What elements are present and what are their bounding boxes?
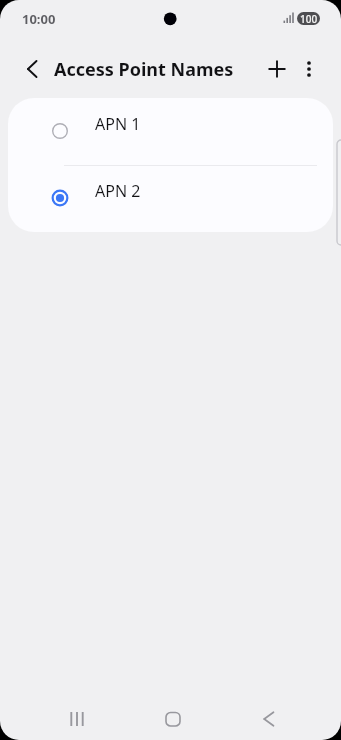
button[interactable]: Navigate up: [10, 47, 54, 91]
staticText: 100: [300, 12, 318, 25]
staticText: APN 2: [95, 180, 141, 202]
button[interactable]: Home: [149, 695, 197, 740]
button[interactable]: APN 2: [8, 165, 333, 232]
staticText: Access Point Names: [54, 57, 234, 82]
staticText: APN 1: [95, 113, 141, 135]
button[interactable]: APN 1: [8, 98, 333, 165]
button[interactable]: More options: [287, 47, 331, 91]
button[interactable]: Back: [245, 695, 293, 740]
button[interactable]: Add: [255, 47, 299, 91]
button[interactable]: Recent apps: [53, 695, 101, 740]
staticText: 10:00: [22, 10, 56, 28]
